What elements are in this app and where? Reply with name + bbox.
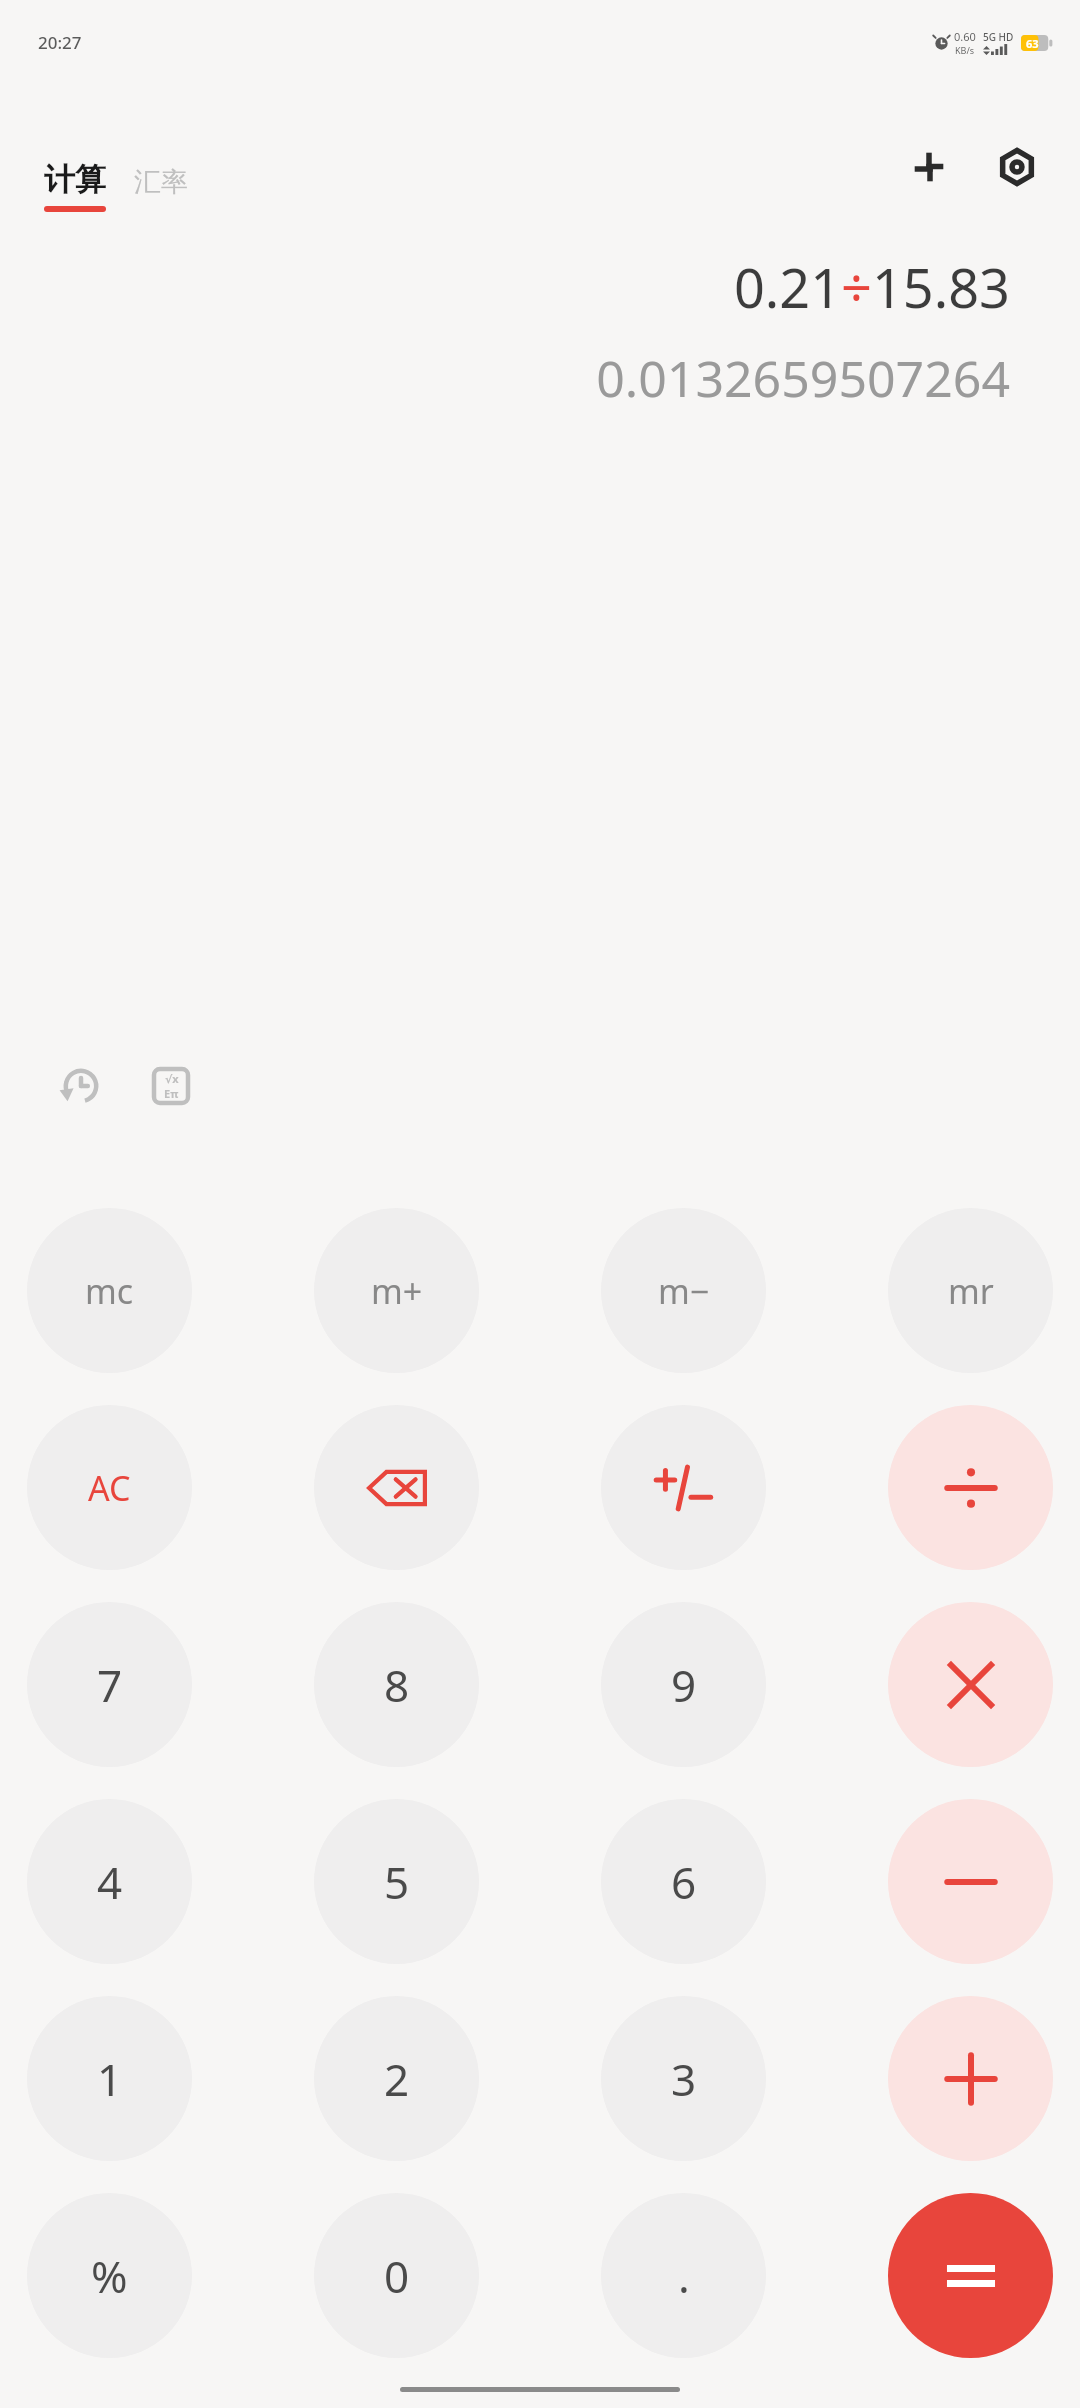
- button[interactable]: 1: [27, 1996, 192, 2161]
- staticText: 3: [671, 2049, 697, 2109]
- staticText: 0: [384, 2246, 410, 2306]
- staticText: 5: [384, 1852, 410, 1912]
- button[interactable]: Equals: [888, 2193, 1053, 2358]
- staticText: 20:27: [38, 31, 82, 54]
- staticText: 6: [671, 1852, 697, 1912]
- staticText: Eπ: [164, 1086, 179, 1101]
- button[interactable]: Add: [888, 1996, 1053, 2161]
- staticText: %: [91, 2246, 128, 2306]
- staticText: 计算: [44, 160, 106, 199]
- button[interactable]: %: [27, 2193, 192, 2358]
- button[interactable]: mr: [888, 1208, 1053, 1373]
- staticText: m+: [371, 1268, 423, 1314]
- button[interactable]: AC: [27, 1405, 192, 1570]
- button[interactable]: 汇率: [134, 165, 188, 212]
- staticText: 0.60: [954, 29, 976, 44]
- staticText: 汇率: [134, 165, 188, 199]
- button[interactable]: m+: [314, 1208, 479, 1373]
- button[interactable]: Settings: [988, 138, 1046, 196]
- button[interactable]: Scientific mode: [140, 1055, 202, 1117]
- staticText: mr: [948, 1268, 994, 1314]
- button[interactable]: 6: [601, 1799, 766, 1964]
- staticText: 2: [384, 2049, 410, 2109]
- staticText: 9: [671, 1655, 697, 1715]
- staticText: m−: [658, 1268, 710, 1314]
- staticText: √x: [165, 1071, 179, 1086]
- button[interactable]: Multiply: [888, 1602, 1053, 1767]
- staticText: 0.21÷15.83: [733, 250, 1010, 324]
- button[interactable]: Floating window: [900, 138, 958, 196]
- button[interactable]: Backspace: [314, 1405, 479, 1570]
- staticText: 8: [384, 1655, 410, 1715]
- button[interactable]: 2: [314, 1996, 479, 2161]
- button[interactable]: mc: [27, 1208, 192, 1373]
- button[interactable]: 5: [314, 1799, 479, 1964]
- staticText: .: [678, 2246, 690, 2306]
- button[interactable]: History: [50, 1055, 112, 1117]
- button[interactable]: Toggle sign: [601, 1405, 766, 1570]
- staticText: mc: [85, 1268, 134, 1314]
- button[interactable]: .: [601, 2193, 766, 2358]
- staticText: KB/s: [955, 44, 975, 56]
- button[interactable]: 8: [314, 1602, 479, 1767]
- staticText: 5G HD: [983, 30, 1014, 44]
- button[interactable]: 3: [601, 1996, 766, 2161]
- button[interactable]: m−: [601, 1208, 766, 1373]
- button[interactable]: Subtract: [888, 1799, 1053, 1964]
- staticText: 0.0132659507264: [596, 344, 1010, 412]
- button[interactable]: 7: [27, 1602, 192, 1767]
- button[interactable]: 计算: [44, 160, 106, 212]
- staticText: 63: [1026, 36, 1039, 51]
- staticText: 7: [97, 1655, 123, 1715]
- button[interactable]: Divide: [888, 1405, 1053, 1570]
- staticText: 1: [97, 2049, 123, 2109]
- button[interactable]: 4: [27, 1799, 192, 1964]
- staticText: 4: [97, 1852, 123, 1912]
- staticText: AC: [88, 1465, 131, 1511]
- button[interactable]: 9: [601, 1602, 766, 1767]
- button[interactable]: 0: [314, 2193, 479, 2358]
